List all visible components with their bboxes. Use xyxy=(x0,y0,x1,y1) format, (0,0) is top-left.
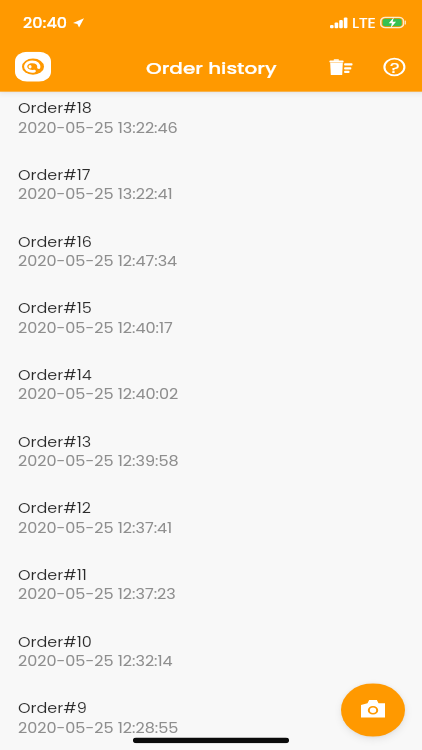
staticText: ? xyxy=(390,57,400,78)
staticText: Order#16 xyxy=(18,232,92,251)
button[interactable]: Order#13 xyxy=(0,425,422,492)
button[interactable]: Order#11 xyxy=(0,558,422,625)
staticText: LTE xyxy=(352,13,376,32)
staticText: 2020-05-25 12:28:55 xyxy=(18,718,179,737)
staticText: Order#18 xyxy=(18,99,92,117)
staticText: 2020-05-25 12:40:17 xyxy=(18,318,173,337)
staticText: Order#17 xyxy=(18,166,91,184)
staticText: 2020-05-25 13:22:46 xyxy=(18,118,178,137)
staticText: Order#14 xyxy=(18,366,92,384)
button[interactable]: Delete all orders xyxy=(316,46,366,89)
button[interactable]: Take photo xyxy=(341,683,405,737)
button[interactable]: Order#14 xyxy=(0,358,422,425)
staticText: 2020-05-25 12:32:14 xyxy=(18,652,173,670)
staticText: Order#15 xyxy=(18,299,92,317)
button[interactable]: Order#18 xyxy=(0,92,422,158)
button[interactable]: Order#17 xyxy=(0,158,422,225)
staticText: 2020-05-25 12:40:02 xyxy=(18,385,179,403)
button[interactable]: Order#15 xyxy=(0,292,422,358)
staticText: Order#11 xyxy=(18,566,87,584)
staticText: Order#13 xyxy=(18,432,92,451)
staticText: 2020-05-25 12:39:58 xyxy=(18,452,179,470)
button[interactable]: Order#10 xyxy=(0,625,422,692)
button[interactable]: Order#12 xyxy=(0,492,422,558)
staticText: 2020-05-25 12:37:41 xyxy=(18,518,173,537)
button[interactable]: Order#16 xyxy=(0,225,422,292)
staticText: 20:40 xyxy=(23,13,68,32)
button[interactable]: Order#9 xyxy=(0,692,422,750)
staticText: Order#9 xyxy=(18,699,87,717)
staticText: Order#12 xyxy=(18,499,92,517)
button[interactable]: Help xyxy=(372,46,420,89)
staticText: Order history xyxy=(146,57,277,80)
staticText: Order#10 xyxy=(18,632,92,651)
staticText: 2020-05-25 12:47:34 xyxy=(18,252,178,270)
button[interactable]: App logo xyxy=(15,52,51,82)
staticText: 2020-05-25 13:22:41 xyxy=(18,185,173,203)
staticText: 2020-05-25 12:37:23 xyxy=(18,585,176,603)
